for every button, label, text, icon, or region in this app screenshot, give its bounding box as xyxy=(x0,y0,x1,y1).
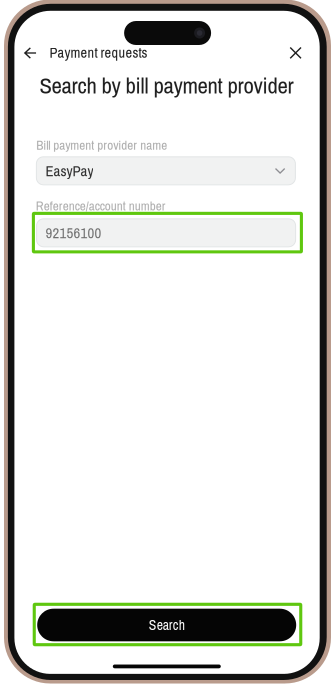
button[interactable]: Search xyxy=(37,609,296,641)
staticText: Search xyxy=(149,616,185,634)
staticText: Payment requests xyxy=(49,43,147,62)
staticText: Search by bill payment provider xyxy=(39,70,293,100)
staticText: Bill payment provider name xyxy=(36,136,167,154)
staticText: Reference/account number xyxy=(36,197,166,215)
button[interactable]: Close xyxy=(281,38,311,68)
staticText: 92156100 xyxy=(46,223,102,243)
button[interactable]: Back xyxy=(15,38,45,68)
staticText: EasyPay xyxy=(45,161,93,181)
button[interactable]: 92156100 xyxy=(37,219,296,247)
button[interactable]: EasyPay xyxy=(36,157,295,185)
